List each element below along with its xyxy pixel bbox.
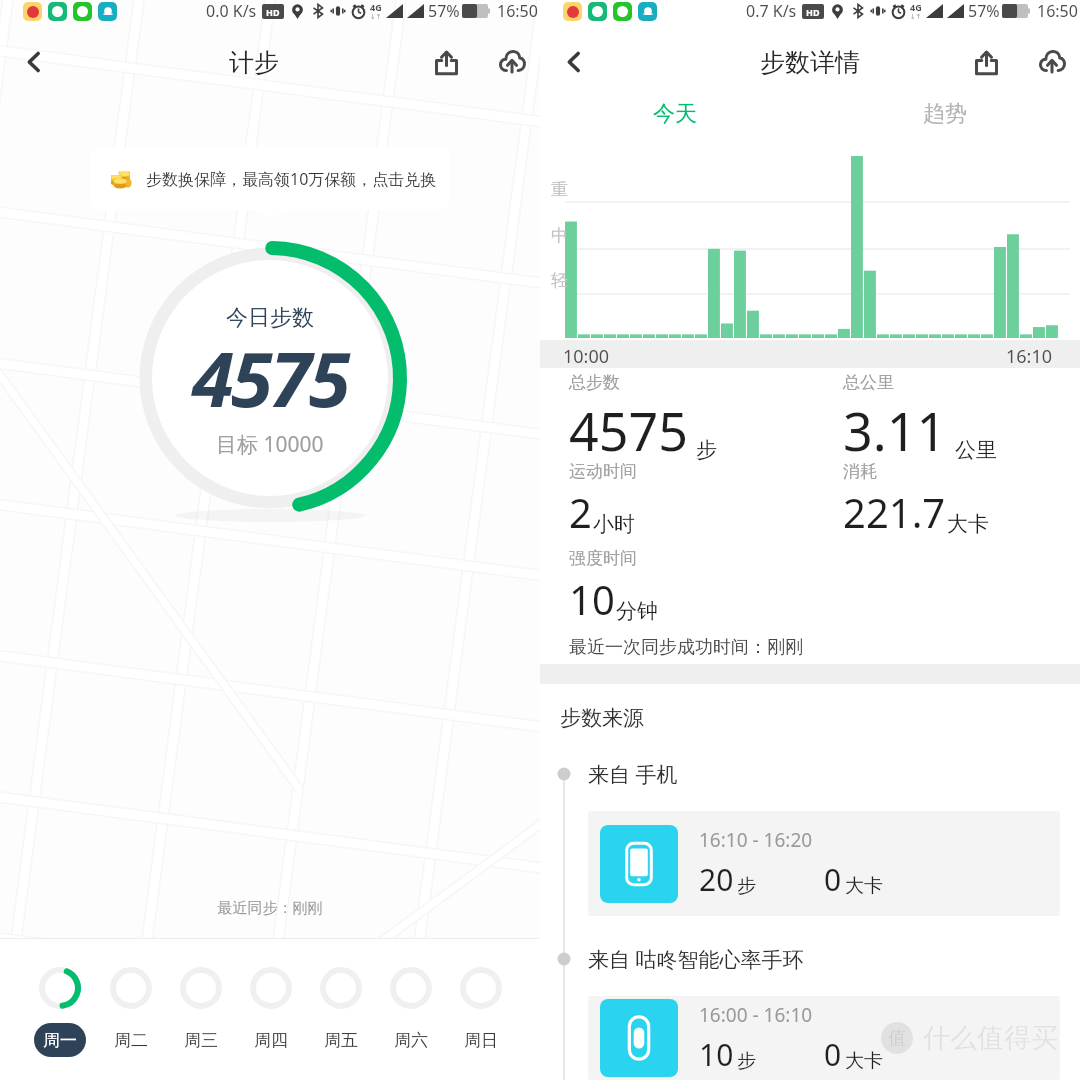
staticText: 4575 bbox=[192, 326, 348, 430]
staticText: 计步 bbox=[229, 47, 279, 78]
staticText: 小时 bbox=[593, 511, 635, 537]
staticText: 57% bbox=[968, 0, 1000, 22]
staticText: 总公里 bbox=[843, 372, 894, 393]
button[interactable]: 16:00 - 16:10 bbox=[588, 996, 1060, 1080]
staticText: 大卡 bbox=[947, 511, 989, 537]
staticText: 周五 bbox=[324, 1030, 358, 1051]
staticText: 0 bbox=[824, 1034, 842, 1075]
staticText: 4575 bbox=[569, 395, 688, 466]
staticText: 16:10 bbox=[1006, 344, 1053, 369]
staticText: 周日 bbox=[464, 1030, 498, 1051]
button[interactable]: 周一 bbox=[24, 967, 95, 1057]
button[interactable]: 今天 bbox=[540, 86, 810, 142]
staticText: 步 bbox=[737, 1049, 756, 1073]
staticText: 10:00 bbox=[563, 344, 610, 369]
staticText: 4G bbox=[910, 1, 922, 13]
button[interactable]: Upload to cloud bbox=[488, 38, 536, 86]
staticText: 16:50 bbox=[1037, 0, 1078, 22]
staticText: 周四 bbox=[254, 1030, 288, 1051]
staticText: 步数换保障，最高领10万保额，点击兑换 bbox=[146, 168, 437, 190]
staticText: 221.7 bbox=[843, 485, 946, 539]
staticText: 中 bbox=[551, 225, 568, 246]
button[interactable]: 周三 bbox=[166, 967, 236, 1057]
button[interactable]: 周二 bbox=[95, 967, 166, 1057]
staticText: 分钟 bbox=[616, 598, 658, 624]
staticText: 4G bbox=[370, 1, 382, 13]
staticText: ↓↑ bbox=[370, 13, 382, 21]
staticText: ↓↑ bbox=[910, 13, 922, 21]
staticText: 16:00 - 16:10 bbox=[699, 1002, 813, 1028]
staticText: 步数来源 bbox=[560, 705, 644, 731]
staticText: 大卡 bbox=[845, 874, 883, 898]
staticText: 总步数 bbox=[569, 372, 620, 393]
button[interactable]: Share bbox=[962, 38, 1010, 86]
staticText: 0 bbox=[824, 859, 842, 900]
staticText: 周六 bbox=[394, 1030, 428, 1051]
staticText: 步 bbox=[737, 874, 756, 898]
staticText: 值 bbox=[888, 1027, 906, 1050]
staticText: 步 bbox=[696, 437, 717, 463]
button[interactable]: 步数换保障，最高领10万保额，点击兑换 bbox=[90, 147, 450, 210]
staticText: 消耗 bbox=[843, 461, 877, 482]
staticText: 10 bbox=[699, 1034, 734, 1075]
staticText: 轻 bbox=[551, 270, 568, 291]
staticText: 周一 bbox=[43, 1030, 77, 1051]
staticText: 16:50 bbox=[497, 0, 538, 22]
staticText: 最近同步：刚刚 bbox=[0, 899, 540, 918]
staticText: 周二 bbox=[114, 1030, 148, 1051]
staticText: 步数详情 bbox=[760, 47, 860, 78]
staticText: 什么值得买 bbox=[923, 1021, 1058, 1055]
staticText: 10 bbox=[569, 572, 615, 626]
staticText: 重 bbox=[551, 179, 568, 200]
button[interactable]: 周五 bbox=[306, 967, 376, 1057]
button[interactable]: Back bbox=[550, 38, 598, 86]
staticText: 20 bbox=[699, 859, 734, 900]
staticText: 3.11 bbox=[843, 395, 947, 466]
staticText: 大卡 bbox=[845, 1049, 883, 1073]
staticText: 0.0 K/s bbox=[206, 0, 257, 22]
staticText: HD bbox=[806, 6, 820, 18]
button[interactable]: 16:10 - 16:20 bbox=[588, 811, 1060, 916]
staticText: 来自 手机 bbox=[588, 760, 678, 789]
button[interactable]: 周六 bbox=[376, 967, 446, 1057]
button[interactable]: 周日 bbox=[446, 967, 516, 1057]
staticText: 来自 咕咚智能心率手环 bbox=[588, 945, 804, 974]
button[interactable]: Share bbox=[422, 38, 470, 86]
staticText: 16:10 - 16:20 bbox=[699, 827, 813, 853]
button[interactable]: Back bbox=[10, 38, 58, 86]
staticText: 0.7 K/s bbox=[746, 0, 797, 22]
staticText: 目标 10000 bbox=[216, 430, 324, 459]
button[interactable]: Upload to cloud bbox=[1028, 38, 1076, 86]
staticText: 公里 bbox=[955, 437, 997, 463]
button[interactable]: 周四 bbox=[236, 967, 306, 1057]
staticText: 周三 bbox=[184, 1030, 218, 1051]
staticText: 最近一次同步成功时间：刚刚 bbox=[569, 636, 803, 659]
staticText: 运动时间 bbox=[569, 461, 637, 482]
staticText: 今天 bbox=[653, 100, 697, 128]
staticText: 趋势 bbox=[923, 100, 967, 128]
staticText: 强度时间 bbox=[569, 548, 637, 569]
button[interactable]: 趋势 bbox=[810, 86, 1080, 142]
staticText: 2 bbox=[569, 485, 592, 539]
staticText: HD bbox=[266, 6, 280, 18]
staticText: 今日步数 bbox=[226, 304, 314, 332]
staticText: 57% bbox=[428, 0, 460, 22]
